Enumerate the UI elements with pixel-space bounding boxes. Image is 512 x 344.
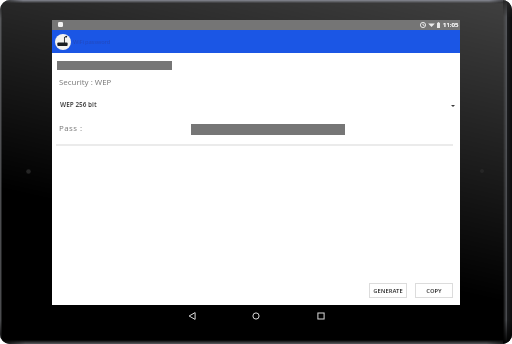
- staticText: Pass :: [59, 123, 83, 134]
- button[interactable]: WEP 256 bit: [52, 97, 460, 111]
- staticText: WEP 256 bit: [60, 100, 97, 109]
- button[interactable]: App icon: [55, 34, 71, 50]
- staticText: GENERATE: [373, 287, 403, 295]
- button[interactable]: COPY: [415, 283, 453, 298]
- button[interactable]: Home: [238, 305, 274, 327]
- button[interactable]: Recent apps: [303, 305, 339, 327]
- staticText: WiFi password: [73, 38, 111, 46]
- staticText: 11:05: [443, 21, 459, 29]
- button[interactable]: GENERATE: [369, 283, 407, 298]
- staticText: COPY: [426, 287, 442, 295]
- staticText: Security : WEP: [59, 77, 112, 88]
- button[interactable]: Back: [174, 305, 210, 327]
